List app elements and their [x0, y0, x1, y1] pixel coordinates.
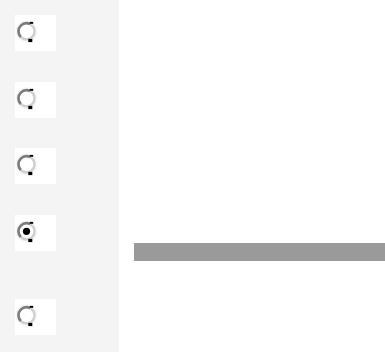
button[interactable]: Option 4 [15, 215, 56, 251]
button[interactable]: Option 3 [15, 148, 56, 184]
button[interactable]: Option 5 [15, 299, 56, 335]
button[interactable]: Option 2 [15, 82, 56, 118]
button[interactable]: Option 1 [15, 15, 56, 51]
